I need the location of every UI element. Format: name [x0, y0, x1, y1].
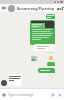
button[interactable]: Camera	[49, 91, 56, 98]
staticText: Boomerang/Pipertrip	[17, 6, 55, 11]
button[interactable]: Reaction	[49, 56, 53, 60]
button[interactable]	[46, 14, 55, 19]
button[interactable]	[38, 68, 55, 73]
button[interactable]	[30, 20, 55, 45]
button[interactable]	[34, 44, 55, 51]
button[interactable]	[8, 74, 22, 86]
button[interactable]: Video call	[55, 5, 62, 12]
button[interactable]: Contact avatar	[1, 80, 7, 86]
button[interactable]: Photo	[31, 56, 37, 61]
button[interactable]	[47, 62, 55, 66]
button[interactable]: Back	[0, 4, 8, 12]
button[interactable]: Send	[56, 91, 63, 98]
button[interactable]: Call	[62, 5, 64, 12]
button[interactable]: Attach	[0, 91, 8, 99]
staticText: Type a message	[8, 92, 34, 97]
